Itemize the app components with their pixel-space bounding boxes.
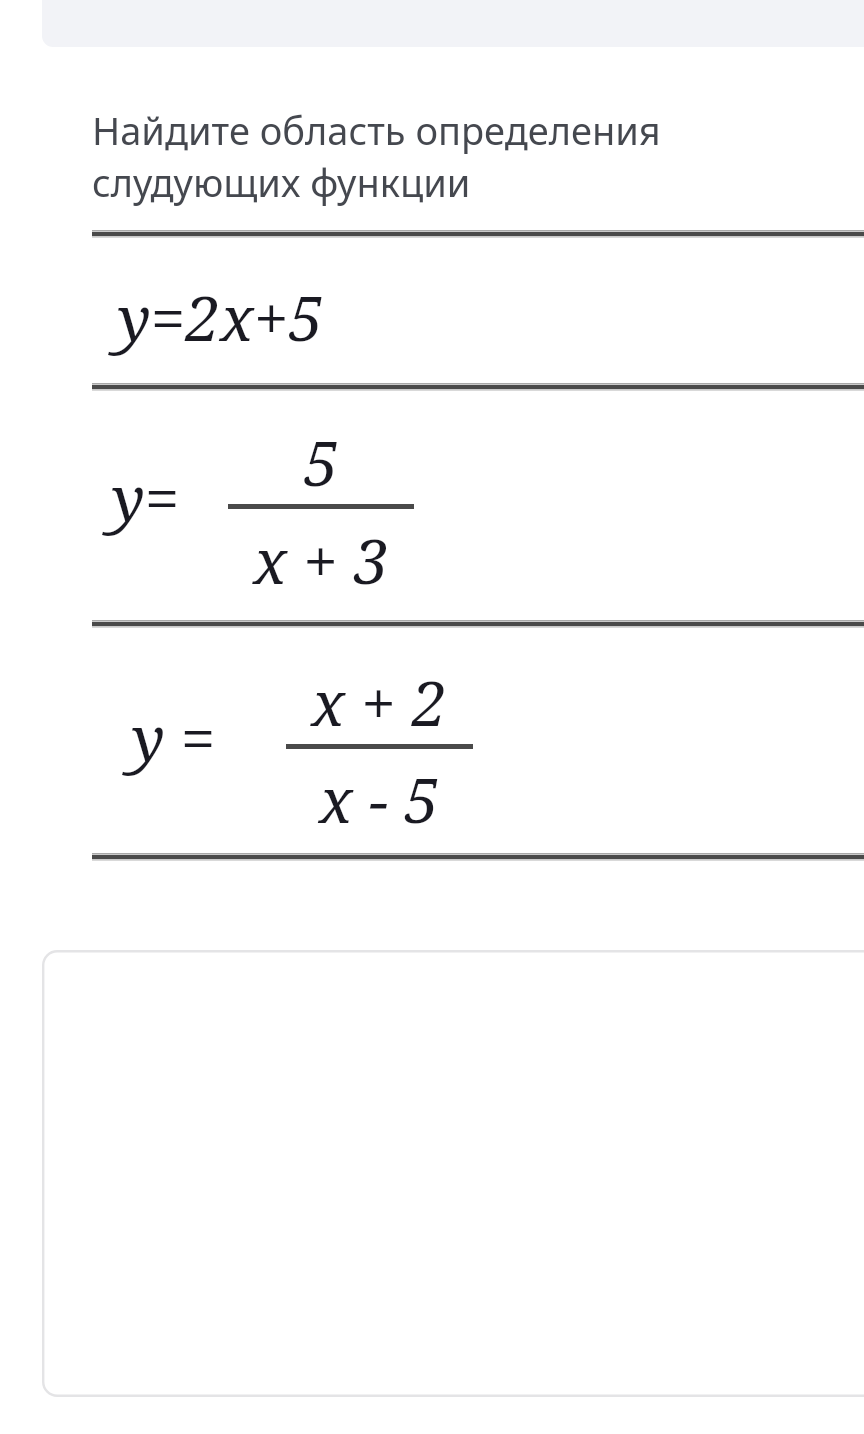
button[interactable]: Answer field: [42, 950, 864, 1397]
staticText: x + 3: [191, 518, 451, 602]
staticText: y =: [132, 695, 216, 779]
staticText: Найдите область определения: [92, 104, 661, 156]
staticText: y=: [112, 455, 180, 539]
staticText: 5: [191, 420, 451, 504]
staticText: y=2x+5: [118, 275, 324, 359]
staticText: x − 5: [249, 757, 509, 841]
staticText: x + 2: [249, 660, 509, 744]
staticText: слудующих функции: [92, 156, 471, 208]
